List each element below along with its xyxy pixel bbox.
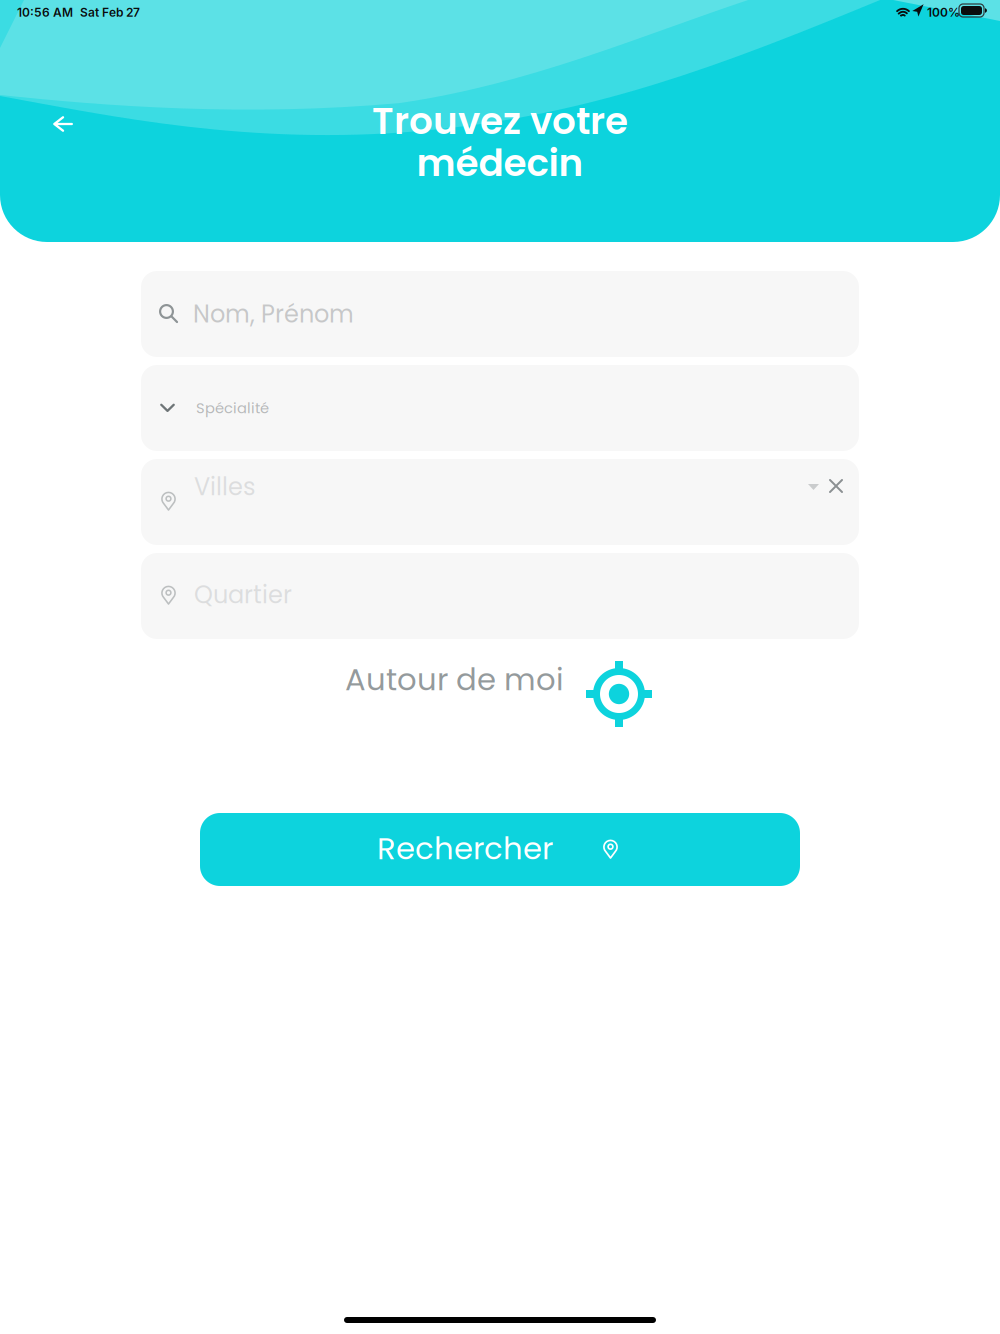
staticText: Autour de moi	[345, 658, 564, 701]
staticText: Sat Feb 27	[80, 5, 140, 19]
button[interactable]: Back	[30, 91, 96, 157]
staticText: Rechercher	[377, 827, 553, 870]
button[interactable]: Spécialité	[141, 365, 859, 451]
staticText: médecin	[416, 137, 583, 189]
staticText: Villes	[194, 470, 256, 504]
button[interactable]: Autour de moi	[345, 660, 655, 728]
staticText: Trouvez votre	[372, 95, 628, 147]
button[interactable]: Quartier	[141, 553, 859, 639]
button[interactable]: Rechercher	[200, 813, 800, 886]
button[interactable]: Nom, Prénom	[141, 271, 859, 357]
staticText: Nom, Prénom	[193, 297, 354, 331]
staticText: 100%	[927, 5, 960, 19]
staticText: Quartier	[194, 578, 292, 612]
staticText: 10:56 AM	[17, 5, 73, 19]
button[interactable]: Villes	[141, 459, 859, 545]
staticText: Spécialité	[196, 398, 269, 418]
